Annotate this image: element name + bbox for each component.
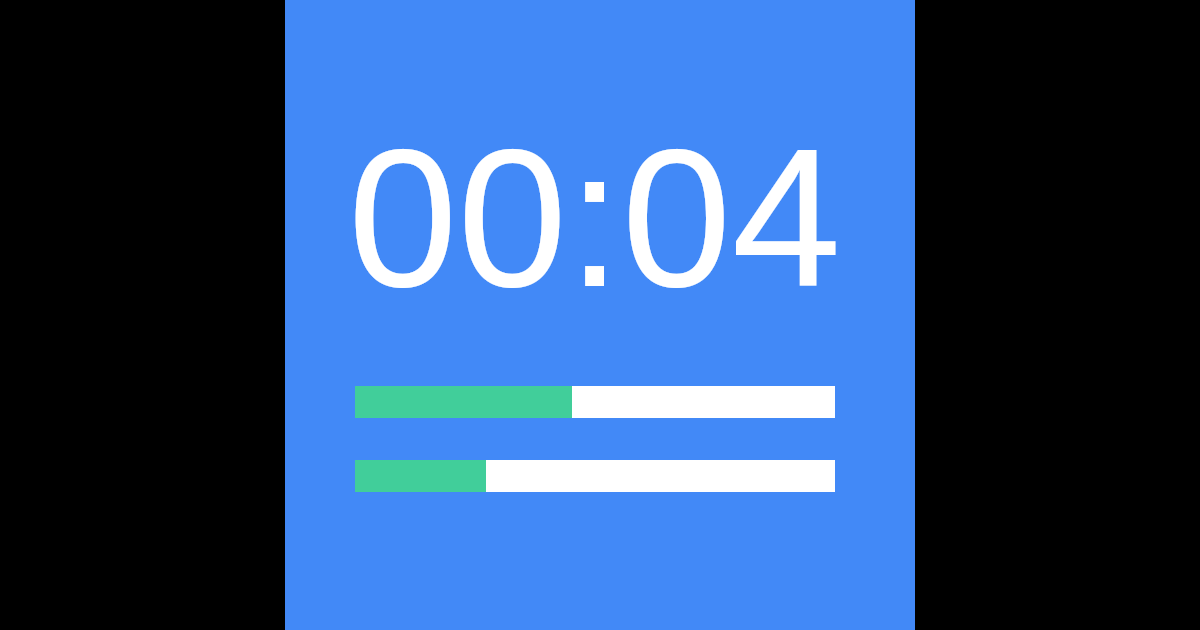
button[interactable]: Interval progress (355, 460, 835, 492)
button[interactable]: 00:04 (348, 108, 841, 328)
button[interactable]: Elapsed time (355, 386, 835, 418)
